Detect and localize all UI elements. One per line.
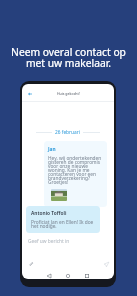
staticText: Hey, wij ondertekenden gisteren de compr… [48, 155, 104, 185]
button[interactable]: Back [22, 84, 114, 102]
staticText: Huis gekocht! [57, 91, 80, 96]
button[interactable]: Back [44, 271, 54, 279]
button[interactable]: Home [63, 271, 73, 279]
button[interactable]: Jan [44, 141, 107, 207]
button[interactable]: Antonio Toffoli [26, 206, 100, 233]
button[interactable]: Send message [101, 259, 111, 269]
staticText: 26 februari [55, 129, 80, 136]
staticText: Antonio Toffoli [31, 210, 67, 217]
staticText: Jan [48, 146, 56, 153]
button[interactable]: Recent apps [82, 271, 92, 279]
staticText: Geef uw bericht in [28, 238, 70, 245]
button[interactable]: Back [23, 87, 36, 100]
button[interactable]: Attach file [26, 259, 36, 269]
staticText: Proficiat Jan en Ellen! Ik doe het nodig… [31, 219, 97, 229]
staticText: Neem overal contact op met uw makelaar. [0, 45, 137, 70]
